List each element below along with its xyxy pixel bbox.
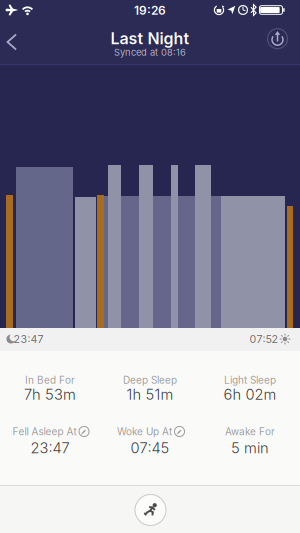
staticText: 07:52 — [249, 332, 278, 345]
button[interactable]: Activity — [134, 494, 166, 526]
staticText: Fell Asleep At — [12, 425, 76, 438]
staticText: Deep Sleep — [123, 374, 177, 386]
staticText: 6h 02m — [223, 386, 276, 403]
staticText: Light Sleep — [224, 374, 276, 386]
staticText: 07:45 — [130, 439, 169, 457]
staticText: 5 min — [231, 439, 269, 457]
staticText: Woke Up At — [117, 425, 172, 438]
staticText: 19:26 — [134, 3, 166, 18]
button[interactable]: Woke Up At — [117, 425, 185, 438]
staticText: 23:47 — [30, 439, 69, 457]
staticText: Synced at 08:16 — [114, 47, 186, 58]
staticText: Awake For — [225, 425, 275, 438]
staticText: 1h 51m — [126, 386, 173, 403]
button[interactable]: Share — [265, 27, 289, 51]
staticText: In Bed For — [25, 374, 75, 386]
staticText: 23:47 — [13, 332, 43, 345]
button[interactable]: Back — [1, 31, 23, 53]
staticText: Last Night — [110, 29, 189, 48]
staticText: 7h 53m — [24, 386, 76, 403]
button[interactable]: Fell Asleep At — [12, 425, 89, 438]
